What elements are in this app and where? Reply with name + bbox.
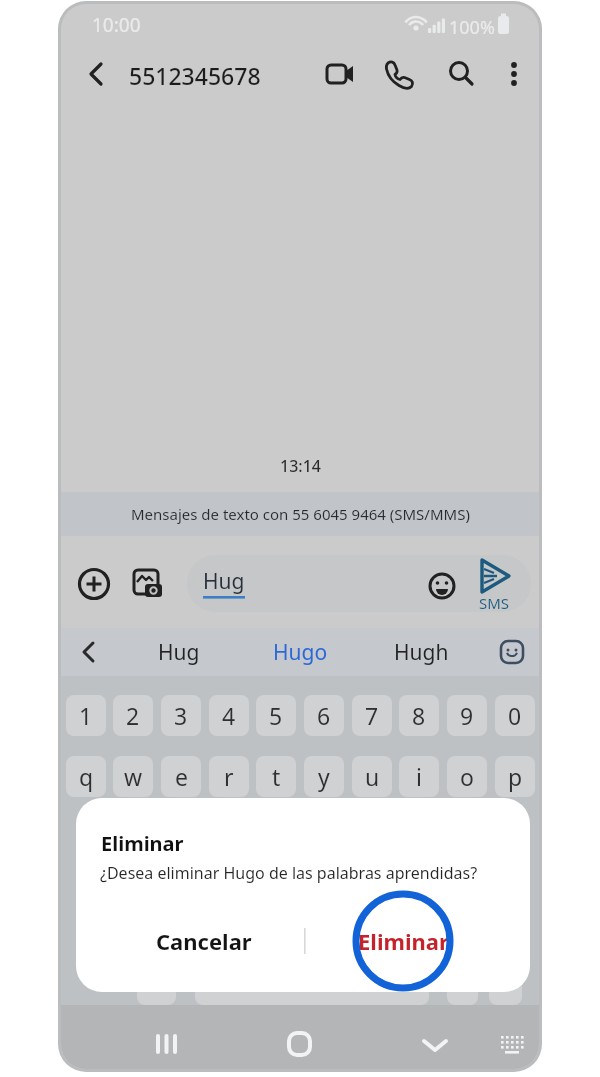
button[interactable]: 4: [209, 695, 249, 736]
button[interactable]: [75, 52, 119, 96]
button[interactable]: q: [66, 756, 106, 797]
staticText: 4: [222, 700, 236, 731]
staticText: t: [272, 761, 281, 792]
button[interactable]: p: [495, 756, 535, 797]
button[interactable]: Hug: [187, 555, 531, 612]
button[interactable]: [376, 52, 420, 96]
staticText: y: [318, 761, 330, 792]
button[interactable]: y: [304, 756, 344, 797]
button[interactable]: Hugo: [273, 638, 328, 667]
button[interactable]: SMS: [465, 555, 525, 612]
staticText: 6: [317, 700, 331, 731]
staticText: 5: [269, 700, 283, 731]
button[interactable]: w: [113, 756, 153, 797]
staticText: e: [175, 761, 188, 792]
button[interactable]: Eliminar: [343, 916, 463, 966]
button[interactable]: 7: [352, 695, 392, 736]
button[interactable]: 2: [113, 695, 153, 736]
button[interactable]: [72, 562, 116, 606]
staticText: 2: [126, 700, 140, 731]
staticText: 10:00: [92, 12, 141, 38]
staticText: 13:14: [280, 455, 321, 477]
staticText: Hug: [203, 567, 245, 596]
button[interactable]: [69, 630, 109, 674]
button[interactable]: [318, 52, 362, 96]
button[interactable]: u: [352, 756, 392, 797]
button[interactable]: 8: [399, 695, 439, 736]
staticText: q: [79, 761, 94, 792]
button[interactable]: [407, 1016, 463, 1069]
button[interactable]: [125, 562, 169, 606]
button[interactable]: o: [447, 756, 487, 797]
staticText: r: [224, 761, 234, 792]
staticText: Mensajes de texto con 55 6045 9464 (SMS/…: [131, 504, 470, 524]
staticText: u: [365, 761, 380, 792]
button[interactable]: t: [256, 756, 296, 797]
button[interactable]: i: [399, 756, 439, 797]
staticText: 9: [460, 700, 474, 731]
button[interactable]: [138, 1016, 194, 1069]
button[interactable]: Cancelar: [144, 916, 264, 966]
staticText: p: [508, 761, 523, 792]
staticText: w: [124, 761, 143, 792]
staticText: Eliminar: [101, 830, 184, 857]
button[interactable]: Hug: [158, 638, 200, 667]
button[interactable]: [272, 1016, 328, 1069]
button[interactable]: [439, 52, 483, 96]
staticText: Eliminar: [358, 926, 449, 956]
button[interactable]: 1: [66, 695, 106, 736]
button[interactable]: 0: [495, 695, 535, 736]
staticText: 8: [412, 700, 426, 731]
staticText: i: [416, 761, 422, 792]
staticText: 100%: [449, 15, 495, 40]
staticText: ¿Desea eliminar Hugo de las palabras apr…: [100, 862, 478, 884]
staticText: o: [460, 761, 474, 792]
button[interactable]: 3: [161, 695, 201, 736]
staticText: 7: [365, 700, 379, 731]
button[interactable]: Hugh: [394, 638, 449, 667]
button[interactable]: 5: [256, 695, 296, 736]
button[interactable]: 6: [304, 695, 344, 736]
staticText: Cancelar: [156, 926, 252, 956]
staticText: SMS: [479, 593, 510, 613]
staticText: 0: [508, 700, 522, 731]
staticText: 3: [174, 700, 188, 731]
staticText: 5512345678: [129, 60, 261, 91]
button[interactable]: [488, 1020, 536, 1068]
button[interactable]: [490, 630, 534, 674]
button[interactable]: e: [161, 756, 201, 797]
button[interactable]: r: [209, 756, 249, 797]
staticText: 1: [79, 700, 93, 731]
button[interactable]: [498, 52, 530, 96]
button[interactable]: 9: [447, 695, 487, 736]
